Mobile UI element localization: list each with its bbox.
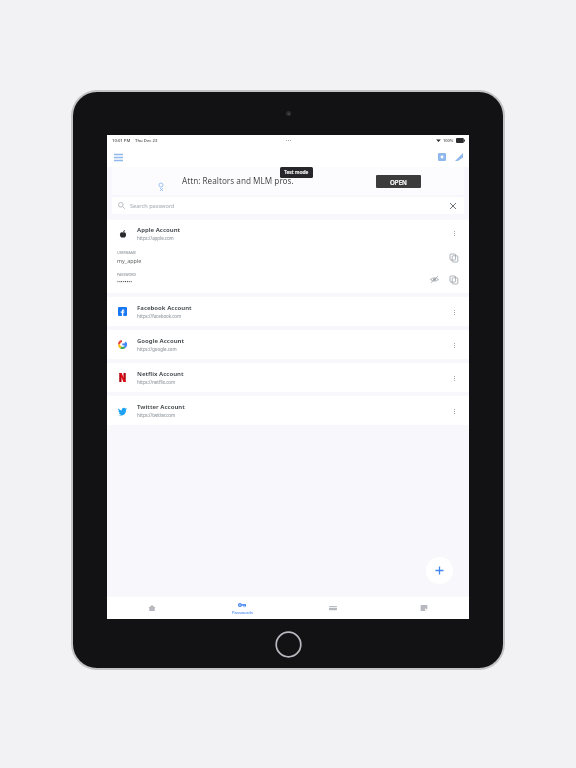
staticText: Apple Account — [137, 226, 181, 234]
button[interactable]: More options — [447, 371, 461, 385]
button[interactable]: More options — [447, 226, 461, 240]
button[interactable]: Facebook Account — [107, 297, 469, 326]
staticText: https://facebook.com — [137, 313, 182, 319]
button[interactable]: Add password — [426, 557, 453, 584]
staticText: 100% — [443, 138, 454, 143]
button[interactable]: Attn: Realtors and MLM pros. — [112, 167, 464, 195]
button[interactable]: Menu — [111, 150, 125, 164]
staticText: Twitter Account — [137, 403, 185, 411]
button[interactable]: Netflix Account — [107, 363, 469, 392]
button[interactable]: Copy — [447, 251, 460, 264]
staticText: Passwords — [232, 610, 253, 616]
button[interactable]: Google Account — [107, 330, 469, 359]
button[interactable]: Sync — [436, 151, 448, 163]
staticText: Search password — [130, 202, 175, 210]
button[interactable]: Clear search — [447, 200, 458, 211]
button[interactable]: More options — [447, 404, 461, 418]
staticText: https://twitter.com — [137, 412, 176, 418]
staticText: https://netflix.com — [137, 379, 176, 385]
staticText: https://apple.com — [137, 235, 174, 241]
staticText: Attn: Realtors and MLM pros. — [182, 175, 294, 186]
button[interactable]: Home — [107, 597, 197, 619]
button[interactable]: Copy — [447, 273, 460, 286]
staticText: my_apple — [117, 257, 142, 264]
staticText: https://google.com — [137, 346, 177, 352]
staticText: •••••••• — [117, 279, 133, 286]
staticText: Netflix Account — [137, 370, 184, 378]
staticText: Thu Dec 23 — [135, 138, 158, 144]
button[interactable]: Twitter Account — [107, 396, 469, 425]
button[interactable]: Apple Account — [107, 220, 469, 246]
button[interactable]: Payments — [287, 597, 378, 619]
staticText: OPEN — [390, 178, 407, 186]
button[interactable]: Notes — [378, 597, 469, 619]
button[interactable]: More options — [447, 305, 461, 319]
button[interactable]: OPEN — [376, 175, 421, 188]
button[interactable]: Sort — [453, 151, 465, 163]
staticText: Test mode — [284, 169, 309, 176]
button[interactable]: Passwords — [197, 597, 287, 619]
staticText: 10:01 PM — [112, 138, 131, 144]
staticText: Google Account — [137, 337, 185, 345]
staticText: PASSWORD — [117, 272, 137, 277]
button[interactable]: Show password — [428, 273, 441, 286]
staticText: USERNAME — [117, 250, 137, 255]
staticText: Facebook Account — [137, 304, 192, 312]
button[interactable]: More options — [447, 338, 461, 352]
button[interactable]: Search password — [112, 197, 464, 214]
